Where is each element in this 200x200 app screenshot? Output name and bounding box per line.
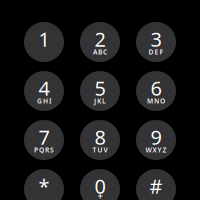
staticText: P Q R S (34, 146, 54, 154)
staticText: T U V (92, 146, 107, 154)
button[interactable]: pound (136, 169, 176, 200)
button[interactable]: 2 (80, 22, 120, 62)
staticText: + (97, 190, 102, 200)
staticText: 3 (150, 26, 161, 52)
button[interactable]: 6 (136, 71, 176, 111)
button[interactable]: 5 (80, 71, 120, 111)
button[interactable]: 4 (24, 71, 64, 111)
staticText: W X Y Z (145, 146, 166, 154)
button[interactable]: 1 (24, 22, 64, 62)
staticText: 5 (94, 75, 105, 101)
staticText: 7 (38, 124, 49, 150)
staticText: 2 (94, 26, 105, 52)
staticText: 8 (94, 124, 105, 150)
staticText: 9 (150, 124, 161, 150)
staticText: # (149, 173, 162, 199)
button[interactable]: 3 (136, 22, 176, 62)
staticText: * (38, 173, 49, 199)
staticText: 4 (38, 75, 49, 101)
staticText: J K L (94, 97, 106, 105)
button[interactable]: 8 (80, 120, 120, 160)
staticText: A B C (93, 48, 107, 56)
button[interactable]: star (24, 169, 64, 200)
staticText: D E F (148, 48, 163, 56)
staticText: 1 (38, 26, 49, 52)
staticText: G H I (37, 97, 51, 105)
button[interactable]: 7 (24, 120, 64, 160)
staticText: 6 (150, 75, 161, 101)
button[interactable]: 9 (136, 120, 176, 160)
button[interactable]: 0 (80, 169, 120, 200)
staticText: 0 (94, 173, 105, 199)
staticText: M N O (147, 97, 165, 105)
